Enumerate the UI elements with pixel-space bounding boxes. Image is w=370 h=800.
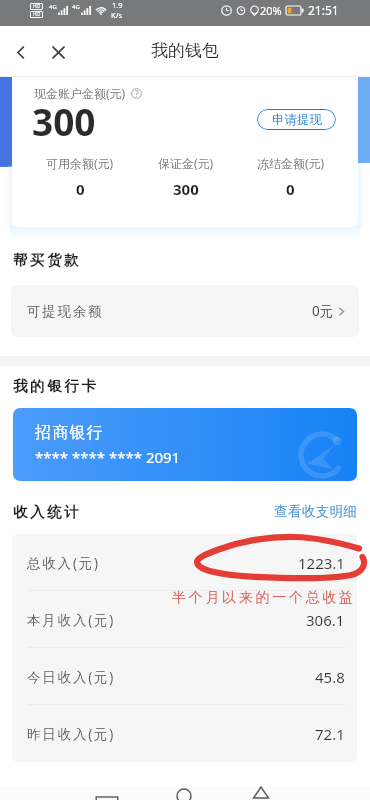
staticText: 45.8: [315, 667, 345, 687]
button[interactable]: Home: [169, 786, 370, 800]
staticText: 300: [32, 96, 96, 146]
button[interactable]: 本月收入(元): [12, 591, 357, 648]
button[interactable]: 可提现余额: [11, 285, 359, 337]
staticText: 0: [76, 179, 85, 199]
staticText: 收入统计: [13, 503, 82, 521]
staticText: 20%: [260, 3, 282, 18]
staticText: 招商银行: [35, 423, 104, 443]
staticText: 4G: [72, 3, 80, 11]
staticText: 4G: [49, 3, 57, 11]
button[interactable]: Close: [44, 38, 72, 66]
staticText: 21:51: [308, 2, 339, 18]
button[interactable]: Back: [6, 38, 34, 66]
staticText: 我的银行卡: [13, 377, 99, 395]
button[interactable]: 招商银行: [13, 408, 357, 481]
staticText: K/s: [111, 10, 123, 20]
button[interactable]: 申请提现: [257, 109, 336, 130]
staticText: 0: [286, 179, 295, 199]
button[interactable]: 今日收入(元): [12, 648, 357, 705]
staticText: 72.1: [315, 724, 345, 744]
staticText: 半个月以来的一个总收益: [172, 589, 356, 607]
staticText: ?: [135, 88, 139, 99]
staticText: HD: [33, 3, 41, 10]
staticText: 1.9: [112, 0, 123, 10]
button[interactable]: 总收入(元): [12, 534, 357, 591]
staticText: 现金账户金额(元): [34, 85, 126, 101]
staticText: 可用余额(元): [46, 155, 114, 171]
button[interactable]: 昨日收入(元): [12, 705, 357, 762]
staticText: 申请提现: [272, 112, 322, 128]
staticText: 0元: [312, 302, 334, 320]
staticText: 总收入(元): [27, 554, 100, 572]
staticText: 冻结金额(元): [257, 155, 325, 171]
staticText: 300: [173, 179, 199, 199]
staticText: 帮买货款: [13, 251, 82, 269]
staticText: 昨日收入(元): [27, 725, 116, 743]
button[interactable]: 查看收支明细: [274, 503, 358, 520]
staticText: 查看收支明细: [274, 503, 358, 520]
button[interactable]: Recent apps: [92, 786, 370, 800]
button[interactable]: Back: [246, 786, 370, 800]
staticText: **** **** **** 2091: [35, 447, 181, 467]
staticText: 可提现余额: [27, 303, 104, 320]
staticText: 今日收入(元): [27, 668, 116, 686]
staticText: HD: [33, 11, 41, 18]
staticText: 1223.1: [298, 553, 345, 573]
staticText: 保证金(元): [158, 155, 214, 171]
staticText: 我的钱包: [151, 40, 219, 61]
staticText: 本月收入(元): [27, 611, 116, 629]
staticText: 306.1: [306, 610, 345, 630]
